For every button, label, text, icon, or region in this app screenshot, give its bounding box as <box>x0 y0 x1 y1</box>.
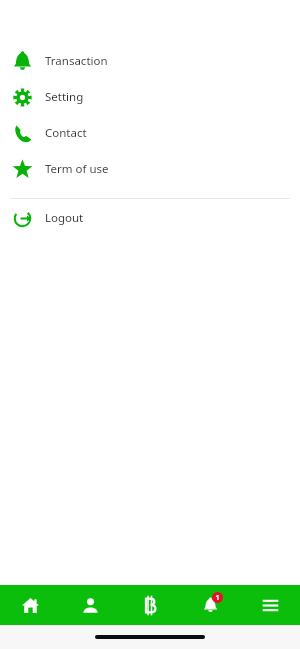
staticText: Term of use <box>45 161 109 177</box>
button[interactable]: Logout <box>0 200 300 236</box>
button[interactable]: Contact <box>0 115 300 151</box>
button[interactable]: Menu <box>240 585 300 625</box>
staticText: Logout <box>45 210 84 226</box>
button[interactable]: Notifications <box>180 585 240 625</box>
button[interactable]: Wallet <box>120 585 180 625</box>
staticText: Transaction <box>45 53 108 69</box>
staticText: Contact <box>45 125 87 141</box>
button[interactable]: Profile <box>60 585 120 625</box>
button[interactable]: Term of use <box>0 151 300 187</box>
staticText: Setting <box>45 89 84 105</box>
staticText: 1 <box>215 593 220 603</box>
button[interactable]: Home <box>0 585 60 625</box>
button[interactable]: Transaction <box>0 43 300 79</box>
button[interactable]: Setting <box>0 79 300 115</box>
